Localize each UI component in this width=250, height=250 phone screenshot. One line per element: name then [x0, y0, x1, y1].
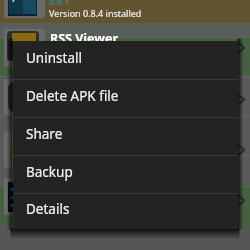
staticText: Backup [26, 163, 73, 181]
button[interactable]: Share [13, 117, 238, 155]
staticText: Delete APK file [26, 87, 119, 105]
button[interactable]: Backup [13, 155, 238, 193]
staticText: RSS Viewer [50, 30, 119, 47]
button[interactable]: Delete APK file [13, 79, 238, 117]
button[interactable]: Uninstall [13, 41, 238, 79]
staticText: Share [26, 125, 63, 143]
button[interactable]: Details [13, 193, 238, 229]
staticText: Uninstall [26, 49, 82, 67]
staticText: Version 0.8.4 installed [49, 7, 142, 19]
staticText: 0.9.1 [49, 0, 70, 7]
staticText: Details [26, 200, 70, 218]
